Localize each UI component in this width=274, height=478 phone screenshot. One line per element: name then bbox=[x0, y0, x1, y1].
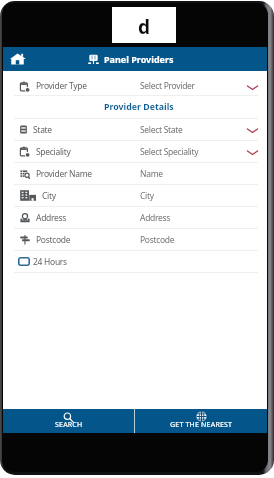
staticText: Provider Name bbox=[36, 168, 92, 180]
button[interactable]: Address bbox=[3, 207, 267, 228]
button[interactable]: 24 Hours bbox=[3, 251, 267, 272]
staticText: City bbox=[42, 190, 56, 202]
button[interactable]: City bbox=[3, 185, 267, 206]
staticText: Provider Details bbox=[104, 101, 174, 113]
button[interactable]: GET THE NEAREST bbox=[135, 409, 267, 433]
button[interactable]: Provider Name bbox=[3, 163, 267, 184]
staticText: Panel Providers bbox=[104, 53, 174, 65]
staticText: Select State bbox=[140, 124, 183, 136]
staticText: State bbox=[33, 124, 52, 136]
staticText: Address bbox=[140, 212, 171, 224]
staticText: d bbox=[138, 14, 151, 40]
staticText: GET THE NEAREST bbox=[170, 420, 233, 430]
staticText: SEARCH bbox=[55, 420, 83, 430]
staticText: Select Speciality bbox=[140, 146, 199, 158]
button[interactable]: State bbox=[3, 119, 267, 140]
button[interactable]: Postcode bbox=[3, 229, 267, 250]
staticText: Address bbox=[36, 212, 67, 224]
staticText: City bbox=[140, 190, 154, 202]
staticText: Name bbox=[140, 168, 163, 180]
staticText: Postcode bbox=[36, 234, 71, 246]
button[interactable]: Provider Type bbox=[3, 71, 267, 95]
button[interactable]: Speciality bbox=[3, 141, 267, 162]
button[interactable]: Home bbox=[8, 49, 28, 69]
staticText: 24 Hours bbox=[33, 256, 67, 268]
button[interactable]: SEARCH bbox=[3, 409, 134, 433]
staticText: Postcode bbox=[140, 234, 175, 246]
staticText: Provider Type bbox=[36, 80, 87, 92]
staticText: Speciality bbox=[36, 146, 71, 158]
staticText: Select Provider bbox=[140, 80, 195, 92]
